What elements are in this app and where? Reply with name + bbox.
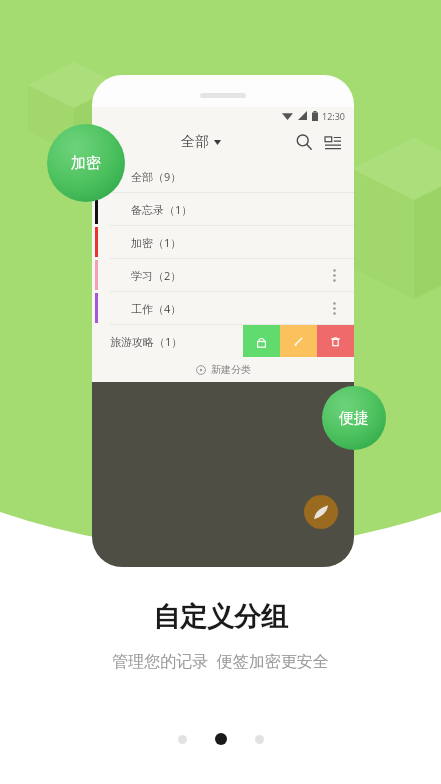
button[interactable]: 学习（2） [92, 259, 354, 291]
staticText: 管理您的记录 便签加密更安全 [112, 650, 329, 672]
staticText: 新建分类 [211, 363, 251, 376]
staticText: 全部（9） [131, 169, 182, 184]
button[interactable]: More options [324, 298, 344, 318]
button[interactable]: 全部（9） [92, 160, 354, 192]
staticText: 便捷 [339, 409, 369, 428]
button[interactable]: More options [324, 265, 344, 285]
button[interactable]: 全部 [181, 133, 221, 151]
button[interactable]: Search [291, 129, 317, 155]
staticText: 备忘录（1） [131, 202, 193, 217]
staticText: 自定义分组 [153, 600, 288, 634]
staticText: 加密 [71, 154, 101, 173]
button[interactable]: New note [304, 495, 338, 529]
staticText: 工作（4） [131, 301, 182, 316]
button[interactable]: Edit [280, 325, 317, 357]
button[interactable]: 工作（4） [92, 292, 354, 324]
button[interactable]: 备忘录（1） [92, 193, 354, 225]
button[interactable]: Sort [320, 129, 346, 155]
button[interactable]: 新建分类 [92, 357, 354, 382]
button[interactable]: Delete [317, 325, 354, 357]
button[interactable]: 旅游攻略（1） [92, 325, 354, 357]
staticText: 全部 [181, 133, 209, 151]
staticText: 学习（2） [131, 268, 182, 283]
button[interactable]: 加密（1） [92, 226, 354, 258]
button[interactable]: Lock [243, 325, 280, 357]
staticText: 旅游攻略（1） [110, 334, 183, 349]
staticText: 加密（1） [131, 235, 182, 250]
staticText: 12:30 [322, 110, 346, 122]
